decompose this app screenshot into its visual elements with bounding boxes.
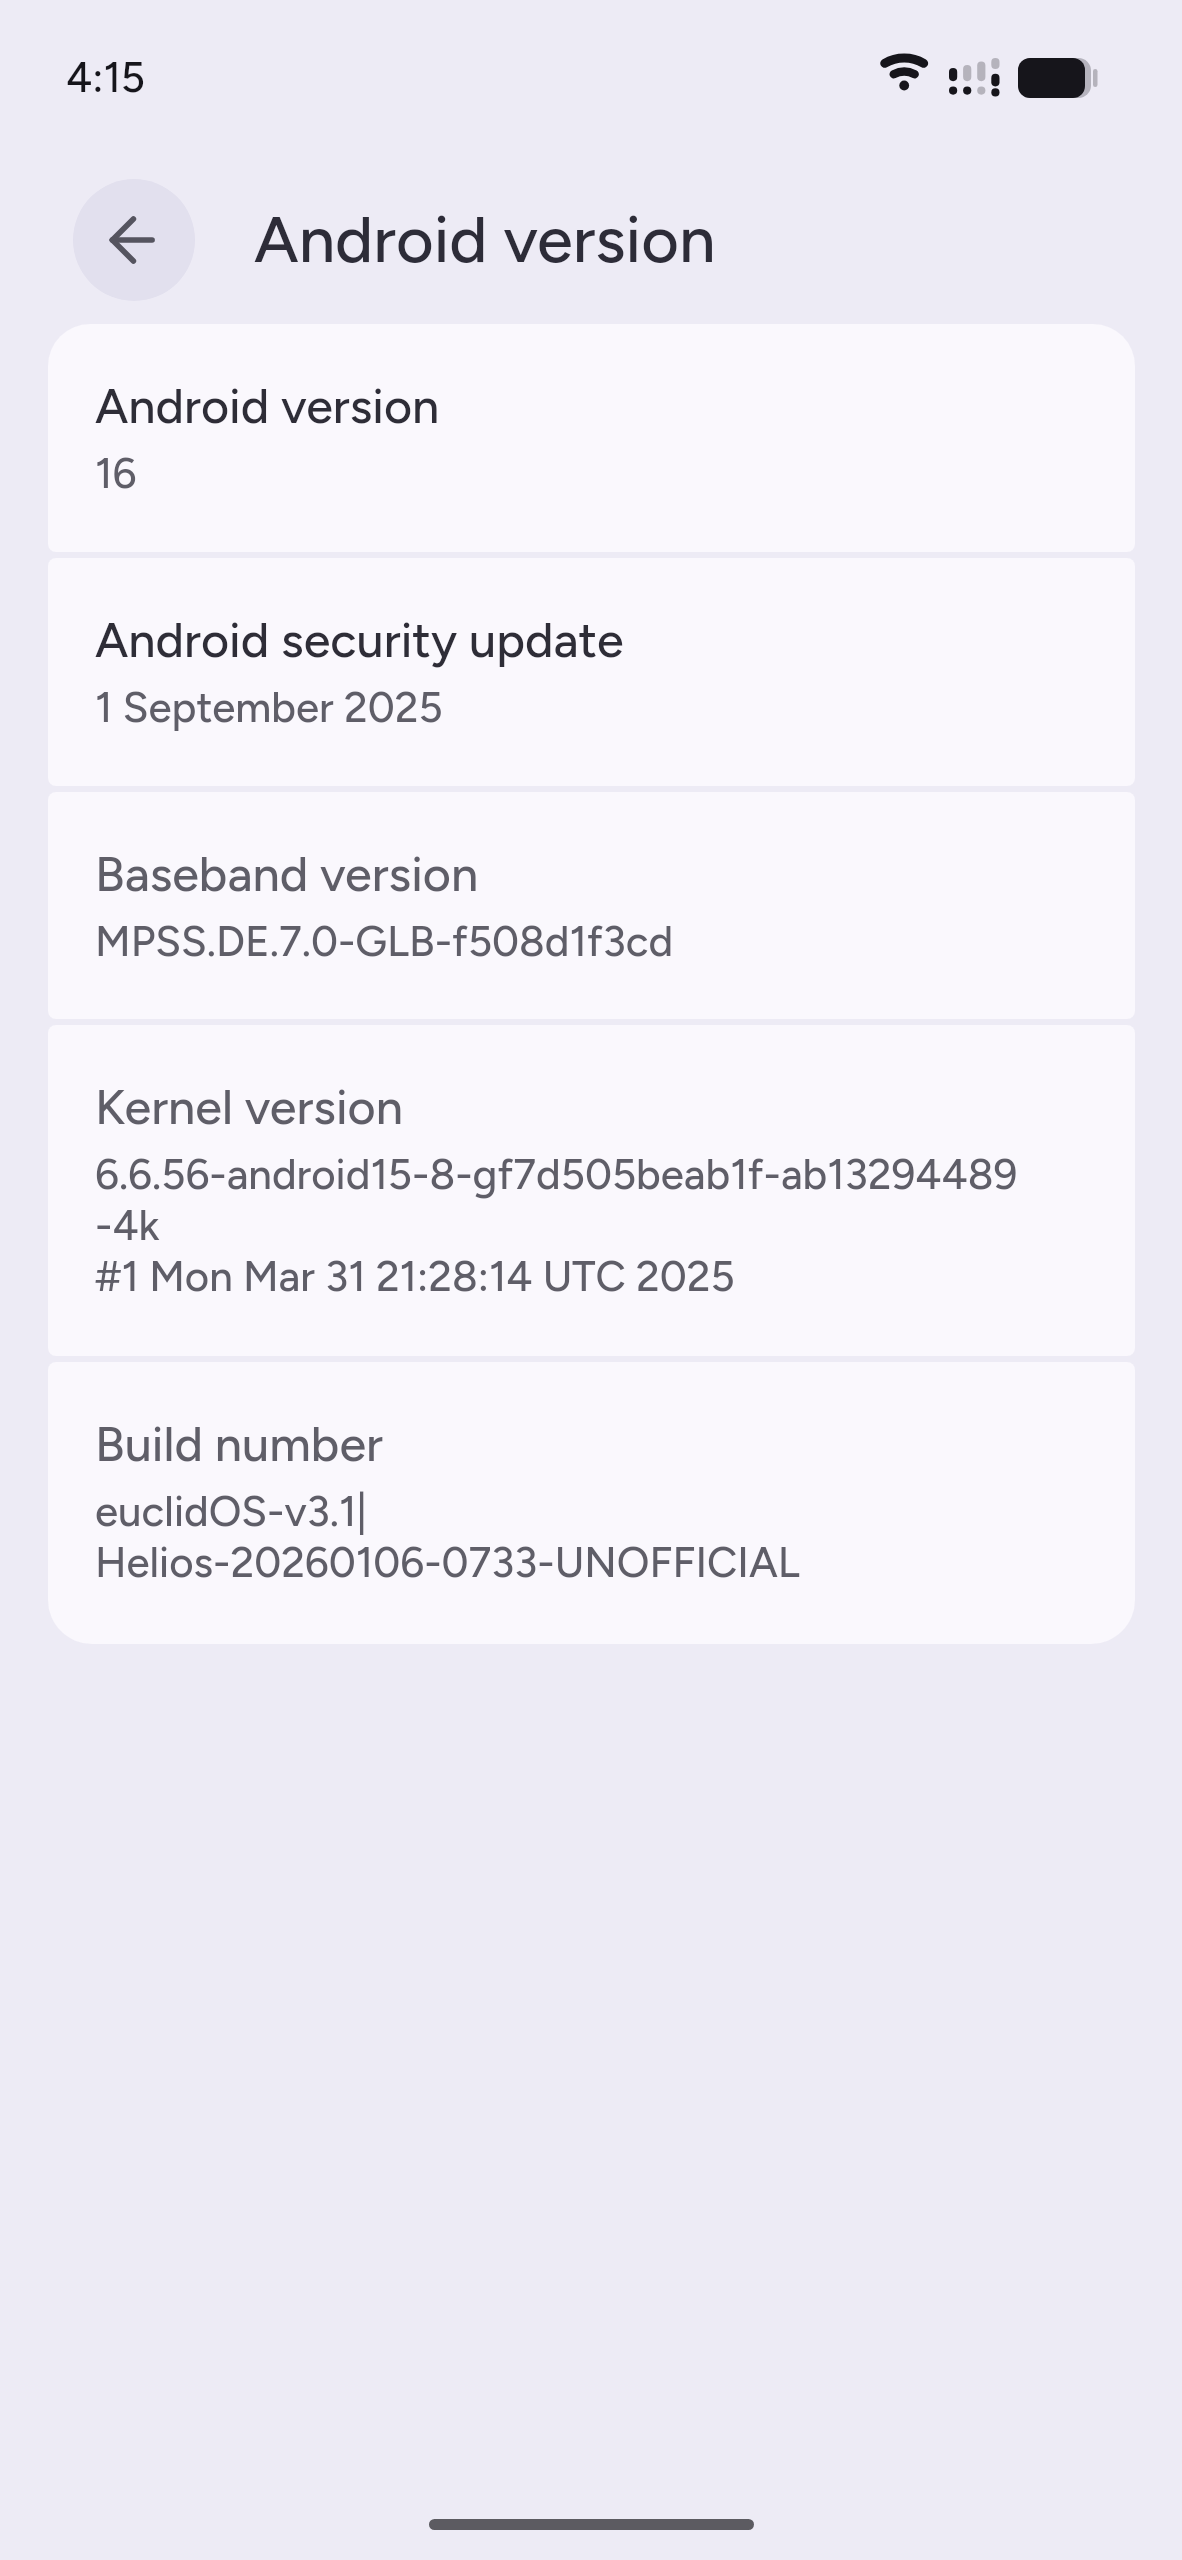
staticText: Baseband version: [95, 837, 479, 905]
button[interactable]: Android version: [48, 324, 1135, 552]
staticText: euclidOS-v3.1| Helios-20260106-0733-UNOF…: [95, 1485, 1095, 1587]
staticText: 6.6.56-android15-8-gf7d505beab1f-ab13294…: [95, 1148, 1095, 1301]
staticText: Build number: [95, 1407, 383, 1475]
staticText: MPSS.DE.7.0-GLB-f508d1f3cd: [95, 915, 1095, 966]
staticText: 16: [95, 447, 1095, 498]
staticText: 1 September 2025: [95, 681, 1095, 732]
staticText: Kernel version: [95, 1070, 403, 1138]
staticText: Android version: [254, 192, 716, 280]
button[interactable]: Baseband version: [48, 792, 1135, 1019]
button[interactable]: Build number: [48, 1362, 1135, 1644]
staticText: 4:15: [66, 49, 146, 103]
button[interactable]: Kernel version: [48, 1025, 1135, 1356]
button[interactable]: Android security update: [48, 558, 1135, 786]
staticText: Android version: [95, 369, 440, 437]
button[interactable]: Back: [73, 179, 195, 301]
staticText: Android security update: [95, 603, 624, 671]
